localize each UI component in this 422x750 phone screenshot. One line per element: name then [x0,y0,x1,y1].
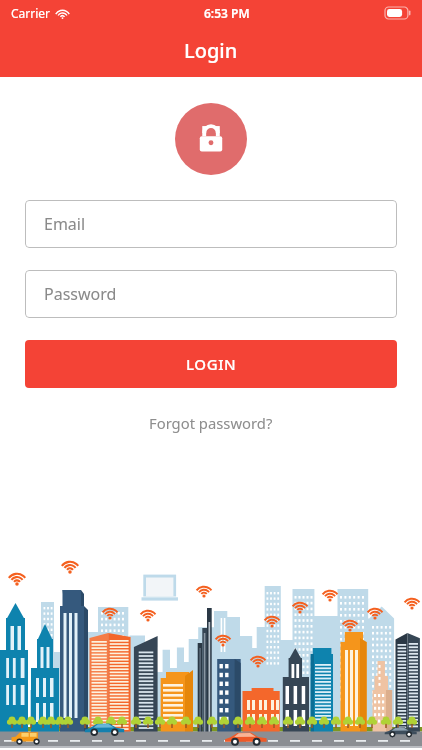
staticText: LOGIN [186,354,237,374]
button[interactable]: Email [25,200,397,248]
staticText: Password [44,283,117,305]
staticText: Email [44,213,86,235]
button[interactable]: Forgot password? [143,407,279,439]
staticText: Login [184,37,238,64]
staticText: 6:53 PM [204,5,250,21]
staticText: Carrier [11,5,51,21]
staticText: Forgot password? [149,413,273,433]
button[interactable]: Password [25,270,397,318]
button[interactable]: LOGIN [25,340,397,388]
